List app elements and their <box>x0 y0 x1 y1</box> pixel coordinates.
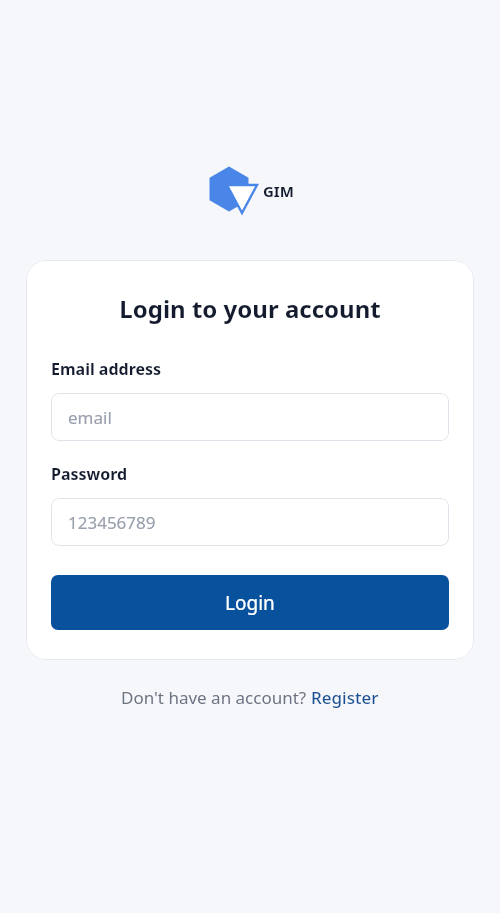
staticText: Don't have an account? <box>121 686 311 709</box>
staticText: Password <box>51 463 128 485</box>
staticText: Login <box>225 590 275 616</box>
staticText: GIM <box>263 181 294 201</box>
staticText: Login to your account <box>51 292 449 325</box>
staticText: Register <box>311 686 379 709</box>
button[interactable]: Login <box>51 575 449 630</box>
button[interactable]: 123456789 <box>51 498 449 546</box>
staticText: 123456789 <box>68 511 156 534</box>
button[interactable]: Register <box>311 686 379 709</box>
staticText: email <box>68 406 112 429</box>
staticText: Email address <box>51 358 162 380</box>
button[interactable]: email <box>51 393 449 441</box>
